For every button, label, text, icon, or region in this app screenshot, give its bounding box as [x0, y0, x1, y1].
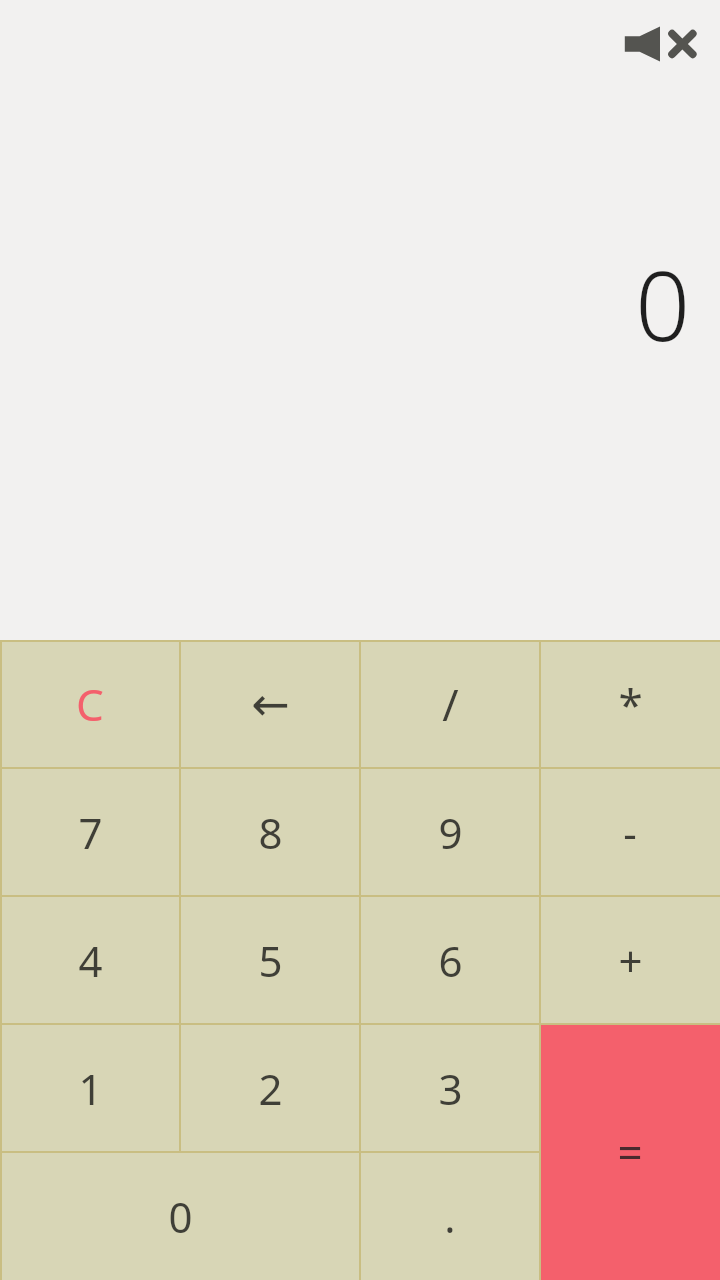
button[interactable]: 6 — [360, 896, 540, 1024]
staticText: 6 — [438, 932, 463, 989]
button[interactable]: Backspace — [180, 640, 360, 768]
staticText: 3 — [438, 1060, 463, 1117]
button[interactable]: 1 — [0, 1024, 180, 1152]
staticText: 4 — [78, 932, 103, 989]
button[interactable]: 7 — [0, 768, 180, 896]
button[interactable]: / — [360, 640, 540, 768]
staticText: 5 — [258, 932, 283, 989]
staticText: ← — [251, 677, 290, 731]
staticText: / — [442, 674, 459, 734]
staticText: 8 — [258, 804, 283, 861]
staticText: 0 — [635, 238, 690, 369]
staticText: 1 — [78, 1060, 103, 1117]
button[interactable]: 0 — [0, 1152, 360, 1280]
staticText: 2 — [258, 1060, 283, 1117]
staticText: - — [623, 804, 637, 861]
button[interactable]: Mute sound — [614, 16, 706, 72]
button[interactable]: 9 — [360, 768, 540, 896]
button[interactable]: 5 — [180, 896, 360, 1024]
button[interactable]: 8 — [180, 768, 360, 896]
staticText: + — [618, 932, 643, 989]
button[interactable]: - — [540, 768, 720, 896]
button[interactable]: . — [360, 1152, 540, 1280]
button[interactable]: 2 — [180, 1024, 360, 1152]
staticText: . — [444, 1188, 456, 1245]
staticText: = — [617, 1122, 643, 1182]
button[interactable]: * — [540, 640, 720, 768]
button[interactable]: + — [540, 896, 720, 1024]
button[interactable]: 3 — [360, 1024, 540, 1152]
staticText: * — [618, 674, 643, 734]
button[interactable]: = — [540, 1024, 720, 1280]
button[interactable]: C — [0, 640, 180, 768]
staticText: 7 — [78, 804, 103, 861]
staticText: 0 — [168, 1188, 193, 1245]
staticText: C — [76, 674, 104, 734]
staticText: 9 — [438, 804, 463, 861]
button[interactable]: 4 — [0, 896, 180, 1024]
